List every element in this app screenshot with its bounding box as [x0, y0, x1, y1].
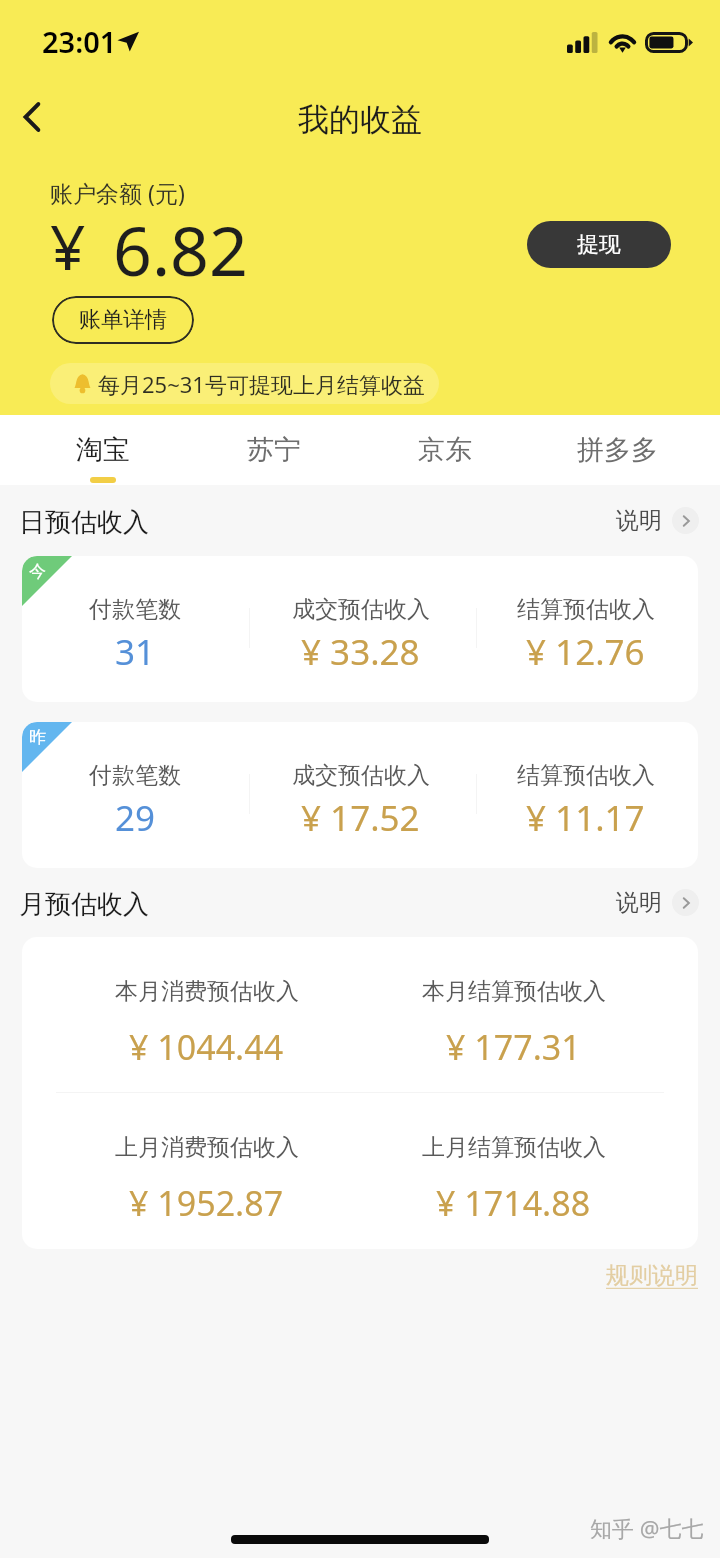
staticText: 日预估收入: [19, 506, 149, 539]
staticText: ¥ 12.76: [526, 628, 645, 676]
staticText: 成交预估收入: [292, 595, 430, 624]
staticText: 说明: [616, 888, 662, 917]
staticText: 规则说明: [606, 1261, 698, 1290]
staticText: 付款笔数: [89, 595, 181, 624]
staticText: 每月25~31号可提现上月结算收益: [98, 369, 425, 399]
staticText: 上月消费预估收入: [115, 1133, 299, 1162]
staticText: 上月结算预估收入: [422, 1133, 606, 1162]
button[interactable]: 淘宝: [18, 415, 188, 485]
staticText: 账单详情: [79, 306, 167, 334]
staticText: 我的收益: [298, 100, 422, 139]
staticText: 23:01: [42, 22, 117, 61]
button[interactable]: 账单详情: [52, 296, 194, 344]
button[interactable]: 拼多多: [532, 415, 702, 485]
staticText: ¥: [50, 204, 86, 288]
staticText: 31: [115, 628, 156, 676]
staticText: 成交预估收入: [292, 761, 430, 790]
staticText: 结算预估收入: [517, 595, 655, 624]
staticText: 拼多多: [577, 433, 658, 467]
staticText: 提现: [577, 231, 621, 259]
staticText: 今: [29, 561, 46, 582]
staticText: ¥ 1044.44: [129, 1024, 284, 1070]
staticText: ¥ 33.28: [301, 628, 420, 676]
staticText: 6.82: [113, 203, 248, 296]
button[interactable]: 付款笔数: [22, 556, 698, 702]
button[interactable]: Back: [1, 89, 61, 149]
staticText: 京东: [418, 433, 472, 467]
staticText: ¥ 1714.88: [436, 1180, 591, 1226]
button[interactable]: 提现: [527, 221, 671, 268]
staticText: ¥ 177.31: [446, 1024, 581, 1070]
staticText: ¥ 17.52: [301, 794, 420, 842]
staticText: 付款笔数: [89, 761, 181, 790]
staticText: 结算预估收入: [517, 761, 655, 790]
staticText: 本月结算预估收入: [422, 977, 606, 1006]
button[interactable]: 京东: [360, 415, 530, 485]
button[interactable]: 说明: [616, 888, 699, 917]
button[interactable]: 苏宁: [189, 415, 359, 485]
staticText: 苏宁: [247, 433, 301, 467]
staticText: 说明: [616, 506, 662, 535]
staticText: 本月消费预估收入: [115, 977, 299, 1006]
staticText: 知乎 @七七: [590, 1513, 704, 1543]
staticText: 月预估收入: [19, 888, 149, 921]
button[interactable]: 付款笔数: [22, 722, 698, 868]
staticText: 淘宝: [76, 433, 130, 467]
staticText: 昨: [29, 727, 46, 748]
button[interactable]: 规则说明: [606, 1261, 698, 1290]
staticText: ¥ 11.17: [526, 794, 645, 842]
staticText: 账户余额 (元): [50, 177, 185, 208]
button[interactable]: 说明: [616, 506, 699, 535]
staticText: 29: [115, 794, 156, 842]
staticText: ¥ 1952.87: [129, 1180, 284, 1226]
